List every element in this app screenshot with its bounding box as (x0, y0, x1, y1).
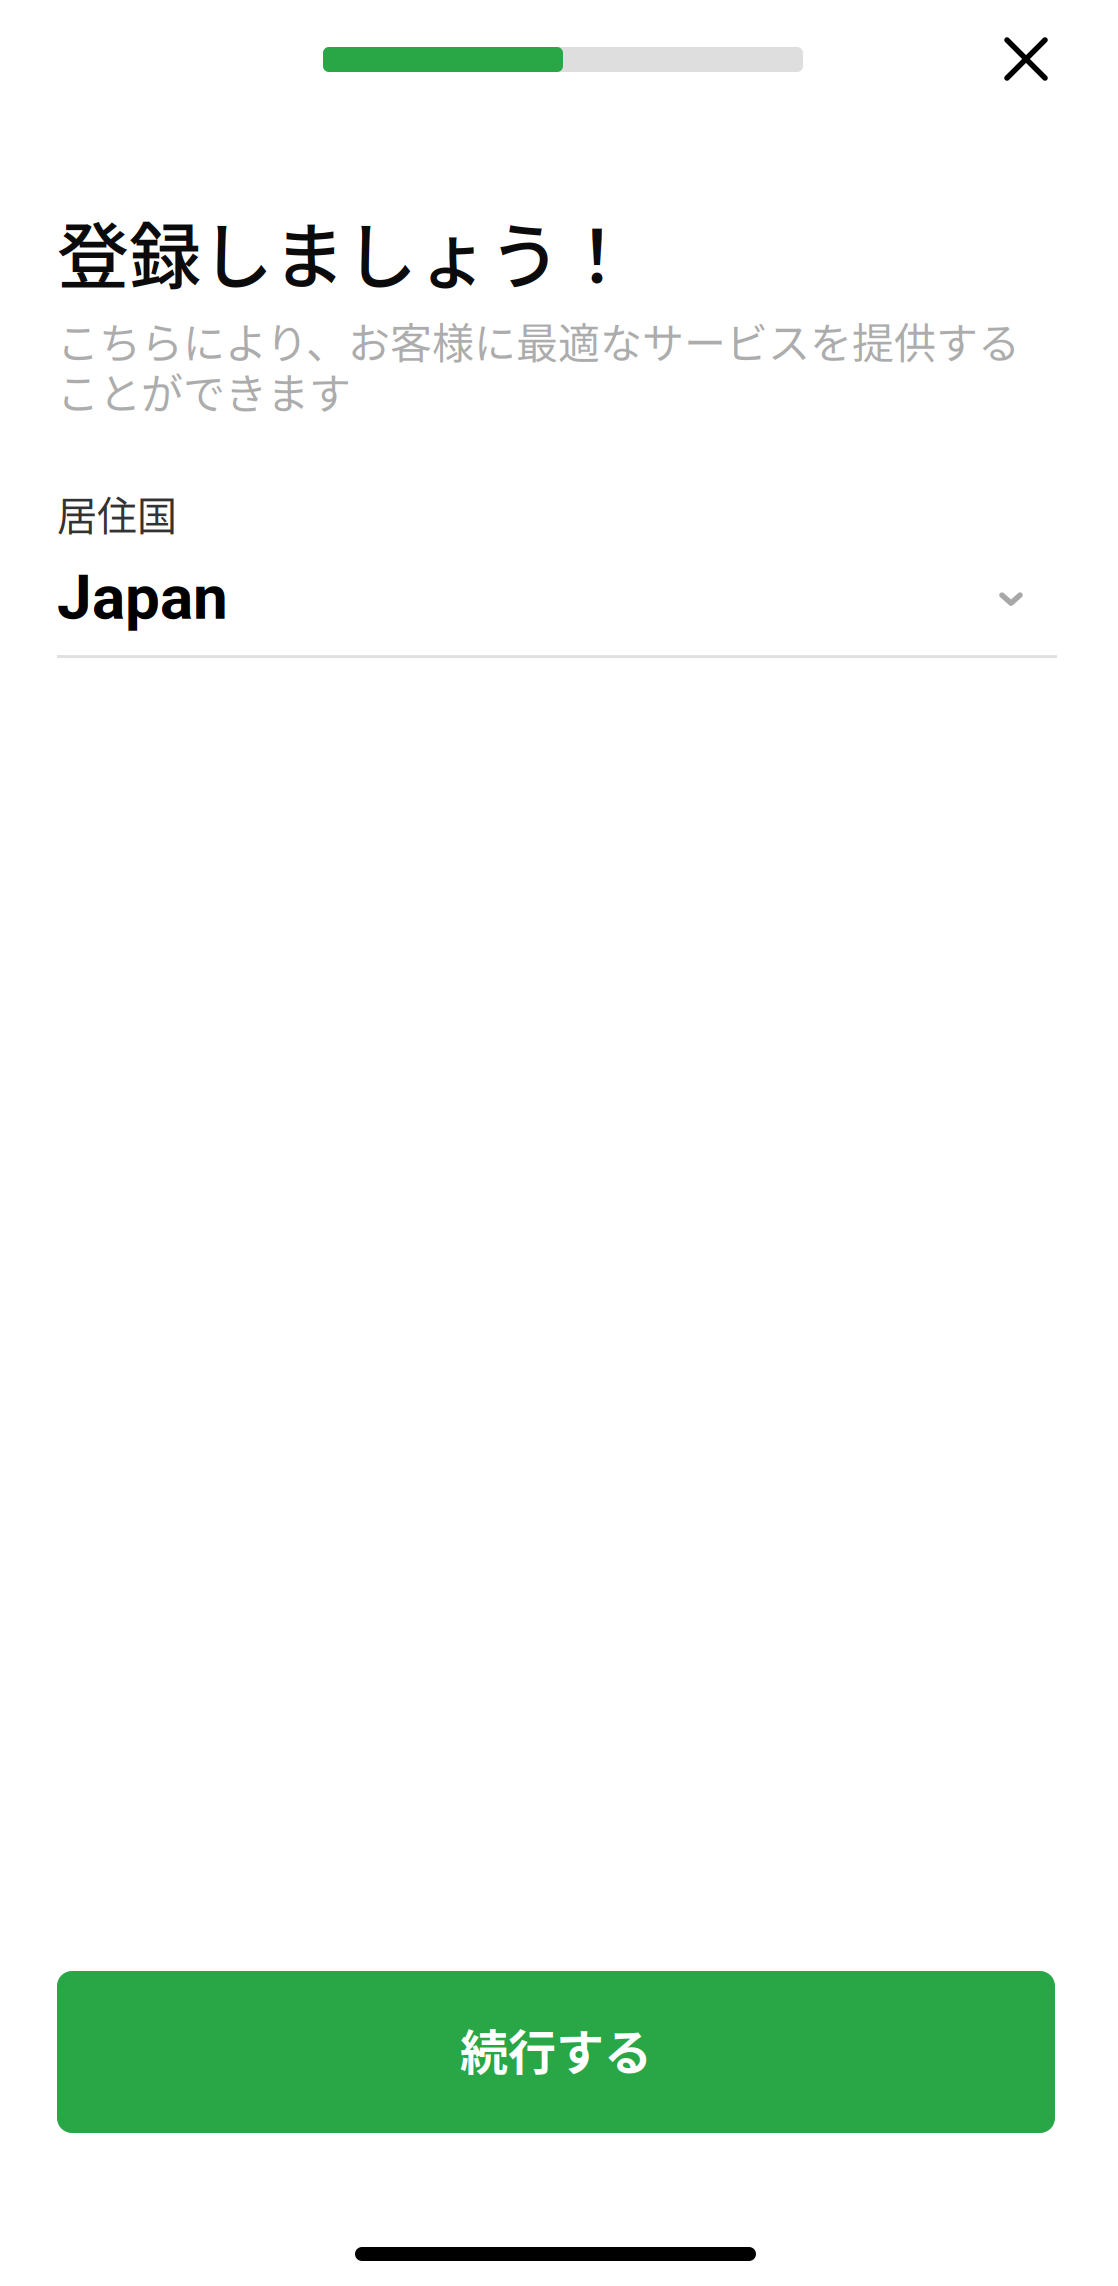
staticText: 居住国 (57, 484, 177, 542)
button[interactable]: 続行する (57, 1971, 1055, 2133)
staticText: Japan (57, 561, 228, 634)
staticText: 続行する (460, 2014, 652, 2084)
staticText: こちらにより、お客様に最適なサービスを提供することができます (57, 315, 1020, 416)
button[interactable]: Close (978, 11, 1074, 107)
staticText: 登録しましょう！ (57, 199, 633, 303)
button[interactable]: Japan (57, 550, 1061, 658)
